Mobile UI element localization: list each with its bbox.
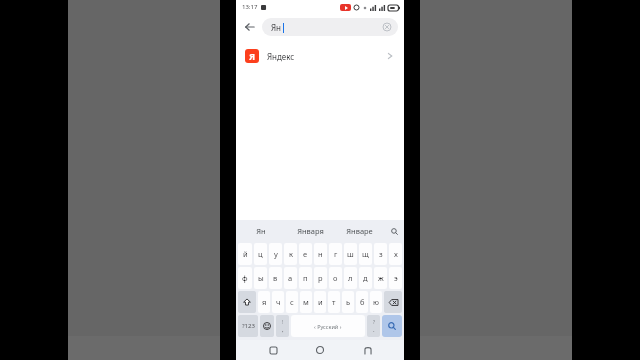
button[interactable]: Clear: [381, 21, 393, 33]
staticText: э: [394, 273, 398, 283]
button[interactable]: и: [314, 291, 326, 313]
button[interactable]: б: [356, 291, 368, 313]
staticText: б: [360, 297, 365, 307]
staticText: .: [373, 326, 375, 334]
button[interactable]: Search suggestions: [384, 220, 404, 242]
staticText: к: [289, 249, 293, 259]
button[interactable]: э: [389, 267, 402, 289]
button[interactable]: Ян: [236, 220, 286, 242]
button[interactable]: я: [258, 291, 270, 313]
button[interactable]: п: [299, 267, 312, 289]
staticText: ц: [258, 249, 263, 259]
staticText: д: [363, 273, 368, 283]
staticText: з: [379, 249, 383, 259]
button[interactable]: о: [329, 267, 342, 289]
staticText: Января: [297, 226, 324, 236]
button[interactable]: Back: [240, 17, 260, 37]
button[interactable]: щ: [359, 243, 372, 265]
button[interactable]: х: [389, 243, 402, 265]
staticText: а: [288, 273, 293, 283]
button[interactable]: к: [284, 243, 297, 265]
button[interactable]: д: [359, 267, 372, 289]
staticText: 13:17: [242, 3, 258, 11]
button[interactable]: ш: [344, 243, 357, 265]
staticText: ?123: [242, 322, 255, 330]
button[interactable]: ?123: [238, 315, 258, 337]
button[interactable]: ч: [272, 291, 284, 313]
button[interactable]: л: [344, 267, 357, 289]
staticText: у: [274, 249, 278, 259]
staticText: щ: [362, 249, 369, 259]
staticText: и: [318, 297, 323, 307]
button[interactable]: !: [276, 315, 289, 337]
staticText: й: [243, 249, 248, 259]
button[interactable]: ц: [254, 243, 267, 265]
button[interactable]: Home: [309, 340, 331, 360]
button[interactable]: Январе: [335, 220, 384, 242]
button[interactable]: з: [374, 243, 387, 265]
button[interactable]: е: [299, 243, 312, 265]
staticText: р: [318, 273, 323, 283]
button[interactable]: ф: [238, 267, 252, 289]
button[interactable]: г: [329, 243, 342, 265]
button[interactable]: ‹ Русский ›: [291, 315, 365, 337]
button[interactable]: Shift: [238, 291, 256, 313]
button[interactable]: а: [284, 267, 297, 289]
staticText: я: [262, 297, 267, 307]
button[interactable]: й: [238, 243, 252, 265]
button[interactable]: у: [269, 243, 282, 265]
staticText: Ян: [271, 22, 282, 33]
staticText: г: [334, 249, 338, 259]
button[interactable]: ж: [374, 267, 387, 289]
staticText: ж: [378, 273, 384, 283]
staticText: ы: [258, 273, 264, 283]
button[interactable]: Recent apps: [262, 340, 284, 360]
button[interactable]: в: [269, 267, 282, 289]
button[interactable]: н: [314, 243, 327, 265]
staticText: Ян: [256, 226, 266, 236]
button[interactable]: м: [300, 291, 312, 313]
staticText: ь: [346, 297, 351, 307]
staticText: о: [333, 273, 338, 283]
staticText: Я: [249, 50, 256, 62]
button[interactable]: с: [286, 291, 298, 313]
button[interactable]: Ян: [262, 18, 398, 36]
staticText: е: [303, 249, 308, 259]
button[interactable]: ь: [342, 291, 354, 313]
button[interactable]: р: [314, 267, 327, 289]
staticText: ч: [276, 297, 281, 307]
staticText: н: [318, 249, 323, 259]
staticText: л: [348, 273, 353, 283]
staticText: в: [273, 273, 278, 283]
button[interactable]: Emoji: [260, 315, 274, 337]
staticText: ю: [373, 297, 379, 307]
staticText: Яндекс: [267, 51, 295, 62]
button[interactable]: Января: [286, 220, 335, 242]
staticText: !: [282, 319, 284, 325]
button[interactable]: Backspace: [384, 291, 402, 313]
button[interactable]: ?: [367, 315, 380, 337]
button[interactable]: Back: [357, 340, 379, 360]
button[interactable]: ы: [254, 267, 267, 289]
staticText: х: [394, 249, 398, 259]
staticText: п: [303, 273, 308, 283]
staticText: т: [332, 297, 336, 307]
staticText: ,: [282, 326, 284, 334]
staticText: ш: [347, 249, 354, 259]
button[interactable]: Search: [382, 315, 402, 337]
staticText: с: [290, 297, 294, 307]
staticText: ф: [242, 273, 248, 283]
staticText: ?: [373, 319, 375, 325]
button[interactable]: т: [328, 291, 340, 313]
button[interactable]: Я: [236, 42, 404, 70]
button[interactable]: ю: [370, 291, 382, 313]
staticText: м: [303, 297, 309, 307]
staticText: Январе: [346, 226, 373, 236]
staticText: ‹ Русский ›: [314, 323, 342, 330]
